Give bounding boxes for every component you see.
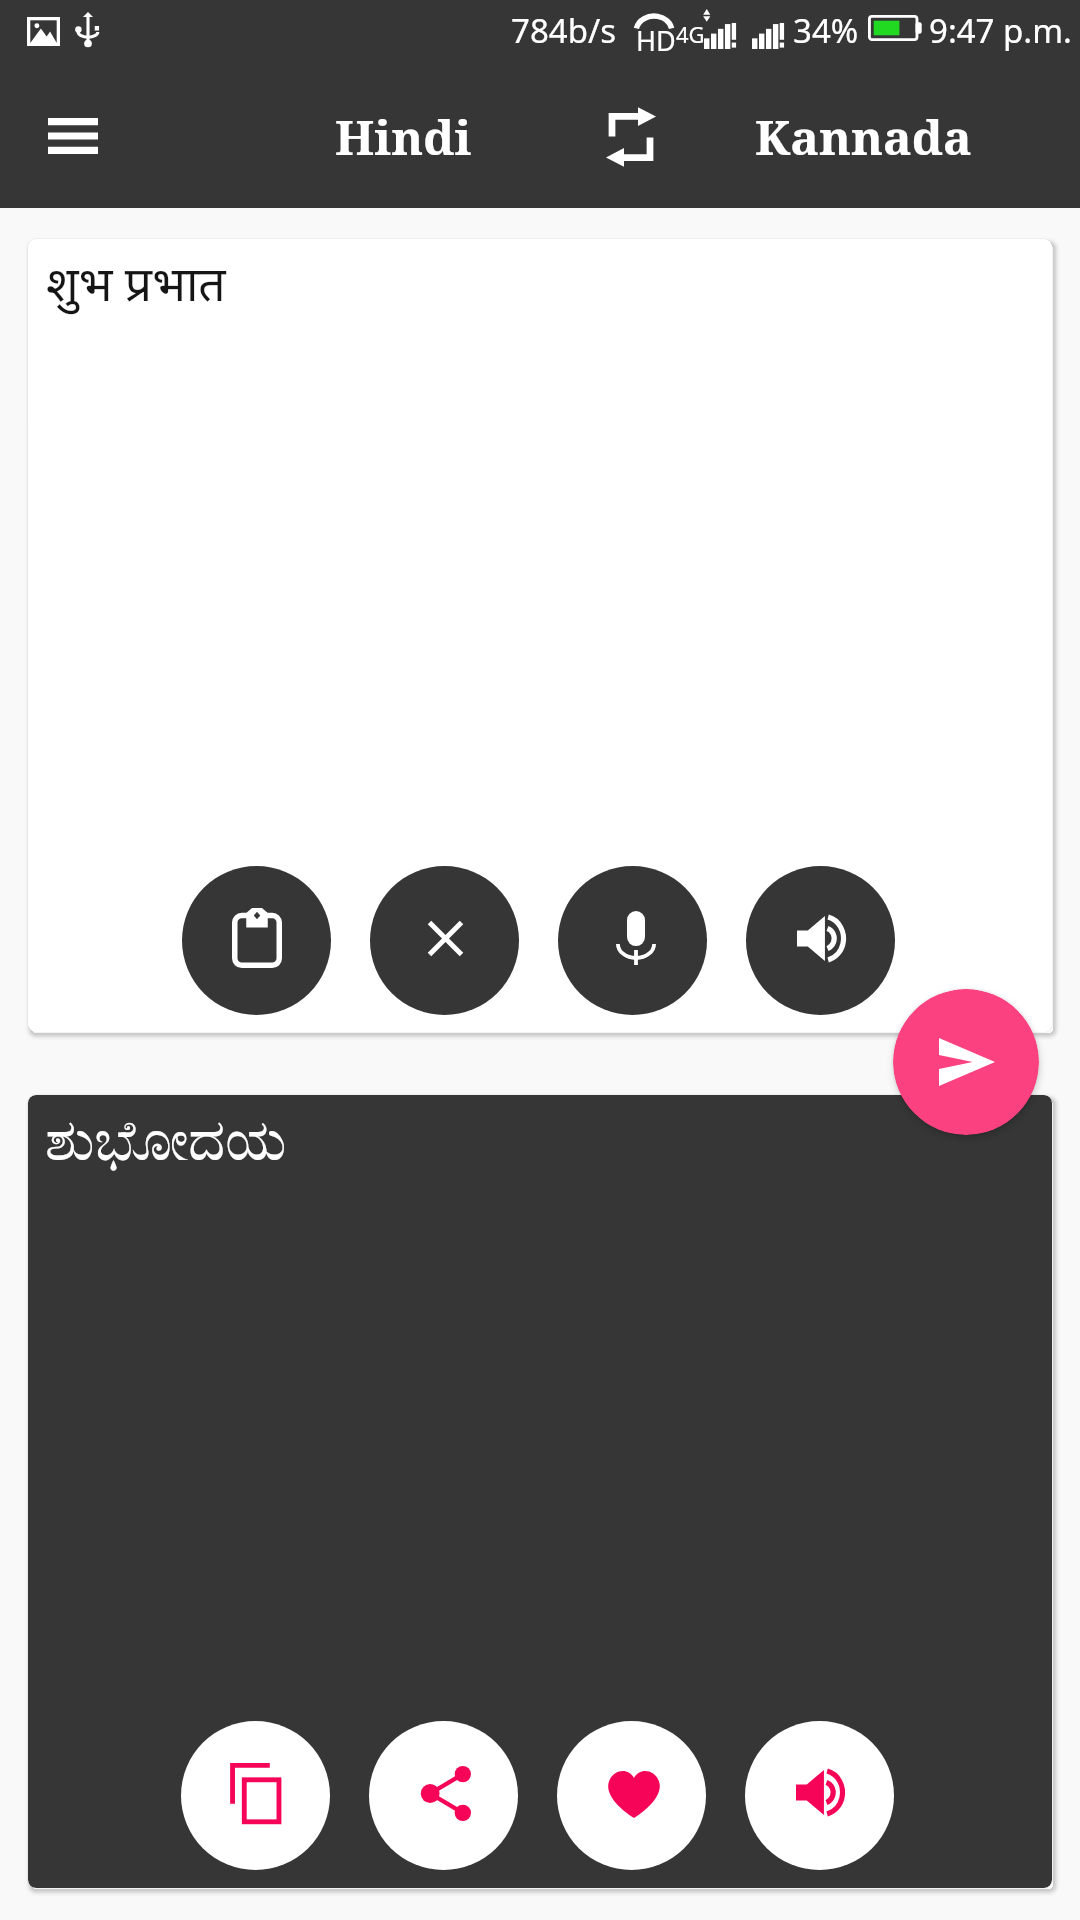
button[interactable]: Menu [28, 100, 118, 172]
button[interactable]: Clear [370, 866, 519, 1015]
staticText: HD [636, 22, 676, 59]
button[interactable]: Swap languages [586, 97, 676, 177]
staticText: 784b/s [511, 8, 617, 53]
staticText: 34% [793, 8, 859, 53]
button[interactable]: Speak [746, 866, 895, 1015]
button[interactable]: Kannada [755, 104, 972, 169]
button[interactable]: Paste [182, 866, 331, 1015]
staticText: Kannada [755, 104, 972, 169]
staticText: 9:47 p.m. [929, 8, 1072, 53]
staticText: शुभ प्रभात [46, 250, 226, 315]
staticText: 4G [676, 19, 705, 49]
staticText: Hindi [335, 104, 472, 169]
button[interactable]: Share [369, 1721, 518, 1870]
button[interactable]: Speak [745, 1721, 894, 1870]
button[interactable]: Microphone [558, 866, 707, 1015]
button[interactable]: Copy [181, 1721, 330, 1870]
staticText: ಶುಭೋದಯ [45, 1114, 287, 1171]
button[interactable]: Favorite [557, 1721, 706, 1870]
button[interactable]: Send [893, 989, 1039, 1135]
button[interactable]: Hindi [335, 104, 472, 169]
